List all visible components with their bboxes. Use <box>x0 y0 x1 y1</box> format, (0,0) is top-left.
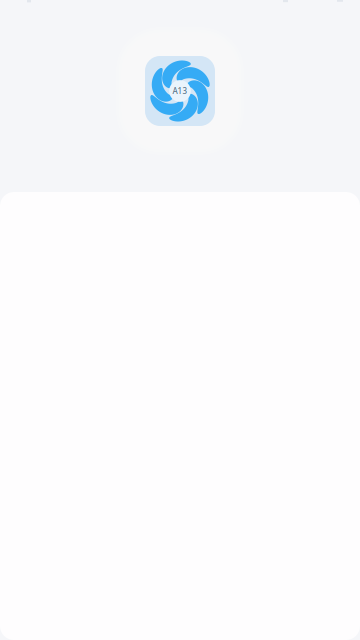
staticText: A13 <box>172 86 187 96</box>
